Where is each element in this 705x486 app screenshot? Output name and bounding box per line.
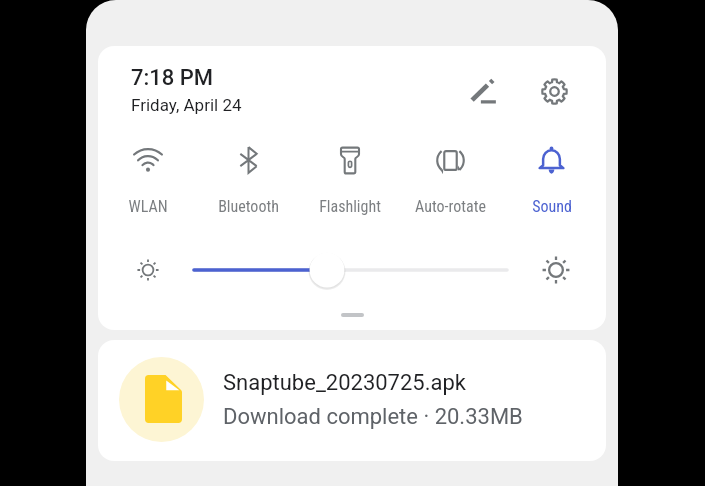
button[interactable]: Bluetooth — [198, 142, 299, 222]
staticText: Auto-rotate — [415, 197, 486, 216]
staticText: 7:18 PM — [131, 65, 214, 91]
button[interactable]: Auto-rotate — [400, 142, 501, 222]
button[interactable]: Edit — [460, 69, 504, 113]
staticText: Download complete · 20.33MB — [223, 404, 523, 430]
button[interactable]: Settings — [532, 69, 576, 113]
button[interactable]: Sound — [501, 142, 602, 222]
staticText: Flashlight — [319, 197, 381, 216]
staticText: Sound — [532, 197, 572, 216]
staticText: Friday, April 24 — [131, 95, 242, 115]
button[interactable]: Snaptube_20230725.apk — [98, 340, 606, 461]
staticText: WLAN — [128, 197, 168, 216]
button[interactable]: WLAN — [98, 142, 198, 222]
button[interactable]: Flashlight — [299, 142, 400, 222]
staticText: Bluetooth — [218, 197, 279, 216]
staticText: Snaptube_20230725.apk — [223, 370, 466, 396]
